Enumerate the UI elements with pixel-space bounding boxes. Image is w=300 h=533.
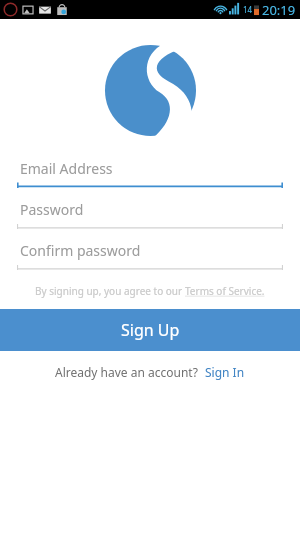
staticText: Password bbox=[20, 200, 84, 219]
button[interactable]: Password bbox=[0, 195, 300, 236]
staticText: 14 bbox=[243, 4, 253, 15]
staticText: Already have an account? bbox=[55, 364, 205, 380]
button[interactable]: Terms of Service bbox=[185, 284, 265, 298]
staticText: Email Address bbox=[20, 159, 113, 178]
button[interactable]: Sign Up bbox=[0, 309, 300, 351]
staticText: Sign In bbox=[205, 364, 245, 380]
button[interactable]: Confirm password bbox=[0, 236, 300, 277]
button[interactable]: Sign In bbox=[205, 364, 245, 380]
button[interactable]: Email Address bbox=[0, 154, 300, 195]
staticText: Terms of Service. bbox=[185, 284, 265, 298]
staticText: By signing up, you agree to our bbox=[35, 284, 185, 298]
staticText: 20:19 bbox=[262, 1, 296, 19]
staticText: Sign Up bbox=[121, 319, 180, 341]
staticText: Confirm password bbox=[20, 241, 141, 260]
